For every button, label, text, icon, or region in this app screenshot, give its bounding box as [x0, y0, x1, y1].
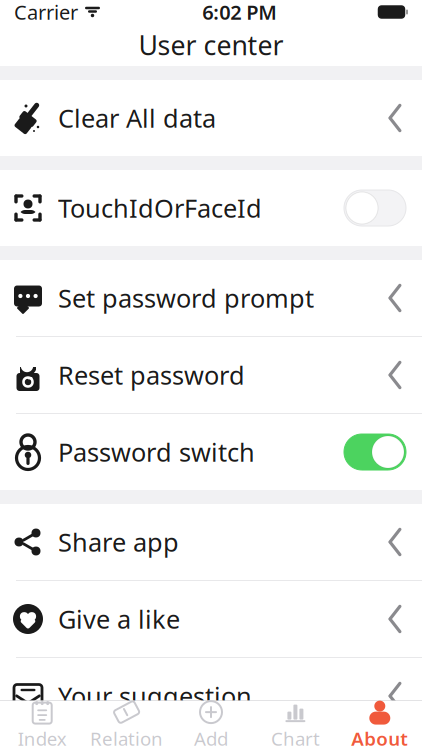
button[interactable]: Give a like: [0, 581, 422, 657]
staticText: 6:02 PM: [202, 0, 277, 25]
button[interactable]: Share app: [0, 504, 422, 580]
button[interactable]: About: [338, 701, 422, 750]
staticText: Relation: [90, 726, 163, 750]
staticText: Set password prompt: [58, 281, 314, 315]
button[interactable]: Relation: [84, 701, 169, 750]
staticText: Add: [194, 726, 228, 750]
button[interactable]: Add: [169, 701, 253, 750]
button[interactable]: Your suggestion: [0, 658, 422, 734]
staticText: Index: [18, 726, 67, 750]
staticText: Give a like: [58, 602, 180, 636]
staticText: Reset password: [58, 358, 245, 392]
staticText: Password switch: [58, 435, 255, 469]
staticText: About: [351, 726, 408, 750]
staticText: Your suggestion: [58, 679, 252, 713]
staticText: TouchIdOrFaceId: [58, 191, 262, 225]
button[interactable]: Set password prompt: [0, 260, 422, 336]
staticText: User center: [138, 27, 283, 63]
staticText: Carrier: [14, 0, 78, 25]
staticText: Clear All data: [58, 101, 216, 135]
button[interactable]: TouchIdOrFaceId: [0, 170, 422, 246]
button[interactable]: Password switch: [0, 414, 422, 490]
button[interactable]: Chart: [253, 701, 338, 750]
staticText: Share app: [58, 525, 179, 559]
button[interactable]: Clear All data: [0, 80, 422, 156]
button[interactable]: Index: [0, 701, 84, 750]
button[interactable]: Reset password: [0, 337, 422, 413]
staticText: Chart: [271, 726, 320, 750]
